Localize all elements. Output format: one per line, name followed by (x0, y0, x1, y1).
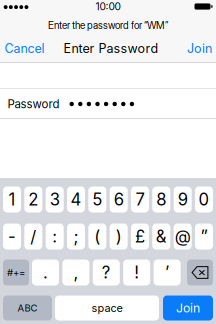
button[interactable]: Join (163, 295, 213, 320)
button[interactable]: 1 (3, 186, 21, 212)
button[interactable]: 2 (24, 186, 42, 212)
staticText: ! (134, 262, 139, 283)
staticText: 0 (198, 189, 209, 210)
button[interactable]: 3 (46, 186, 64, 212)
staticText: 10:00 (95, 0, 120, 13)
staticText: Join (176, 301, 200, 315)
button[interactable]: & (152, 223, 170, 249)
button[interactable]: ” (195, 223, 213, 249)
staticText: : (52, 226, 57, 247)
button[interactable]: 4 (67, 186, 85, 212)
button[interactable]: 5 (88, 186, 106, 212)
button[interactable]: Delete (187, 259, 213, 285)
staticText: ? (102, 262, 111, 283)
staticText: Cancel (4, 41, 44, 56)
staticText: 7 (135, 189, 144, 210)
staticText: @ (175, 226, 191, 247)
staticText: space (91, 301, 122, 315)
button[interactable]: - (3, 223, 21, 249)
staticText: . (43, 262, 48, 283)
button[interactable]: 0 (195, 186, 213, 212)
button[interactable]: / (24, 223, 42, 249)
button[interactable]: Password (0, 89, 216, 118)
button[interactable]: ’ (154, 259, 181, 285)
button[interactable]: ) (110, 223, 128, 249)
staticText: 4 (70, 189, 81, 210)
button[interactable]: ; (67, 223, 85, 249)
staticText: #+= (7, 267, 25, 278)
staticText: Enter Password (63, 41, 158, 56)
staticText: 1 (8, 189, 15, 210)
staticText: Enter the password for “WM” (48, 19, 168, 31)
button[interactable]: £ (131, 223, 149, 249)
staticText: , (73, 262, 78, 283)
button[interactable]: : (46, 223, 64, 249)
button[interactable]: 9 (174, 186, 192, 212)
button[interactable]: . (32, 259, 59, 285)
button[interactable]: 6 (110, 186, 128, 212)
staticText: Join (187, 41, 212, 56)
staticText: 2 (28, 189, 38, 210)
button[interactable]: 7 (131, 186, 149, 212)
staticText: 6 (114, 189, 124, 210)
staticText: ” (200, 226, 207, 247)
staticText: ) (116, 226, 122, 247)
staticText: - (8, 226, 16, 247)
button[interactable]: ? (93, 259, 120, 285)
button[interactable]: ABC (3, 295, 52, 320)
staticText: / (30, 226, 36, 247)
button[interactable]: space (55, 295, 159, 320)
button[interactable]: , (62, 259, 89, 285)
button[interactable]: #+= (3, 259, 29, 285)
button[interactable]: @ (174, 223, 192, 249)
staticText: 9 (178, 189, 188, 210)
staticText: ABC (17, 302, 37, 314)
staticText: Password (7, 97, 59, 111)
staticText: £ (135, 226, 145, 247)
button[interactable]: 8 (152, 186, 170, 212)
staticText: 8 (156, 189, 166, 210)
button[interactable]: ( (88, 223, 106, 249)
button[interactable]: Cancel (0, 37, 49, 59)
staticText: ’ (165, 262, 169, 283)
staticText: & (156, 226, 167, 247)
button[interactable]: Join (183, 37, 216, 59)
staticText: 5 (92, 189, 102, 210)
button[interactable]: ! (123, 259, 150, 285)
staticText: ( (94, 226, 100, 247)
staticText: 3 (50, 189, 60, 210)
staticText: ; (73, 226, 78, 247)
